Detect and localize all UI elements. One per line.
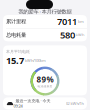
staticText: 15.7	[6, 54, 24, 67]
staticText: 电池健康度	[37, 85, 52, 88]
staticText: km	[77, 19, 84, 24]
staticText: 总电耗量	[6, 32, 26, 38]
staticText: 7011	[57, 15, 77, 28]
staticText: 89%	[36, 74, 53, 85]
staticText: 580	[60, 29, 75, 41]
button[interactable]: 累计里程	[3, 15, 87, 28]
staticText: 最近一次充电 · 今天 09:24	[13, 98, 50, 109]
button[interactable]: 总电耗量	[3, 28, 87, 41]
staticText: kWh	[75, 32, 84, 37]
button[interactable]: 最近一次充电 · 今天 09:24	[0, 97, 90, 109]
staticText: 我的爱车 · 本月行驶数据	[18, 8, 71, 15]
staticText: 累计里程	[6, 18, 26, 25]
staticText: kWh/100km	[24, 58, 46, 63]
staticText: 32 kWh/1h	[65, 101, 83, 106]
staticText: 本月平均电耗	[6, 49, 30, 54]
